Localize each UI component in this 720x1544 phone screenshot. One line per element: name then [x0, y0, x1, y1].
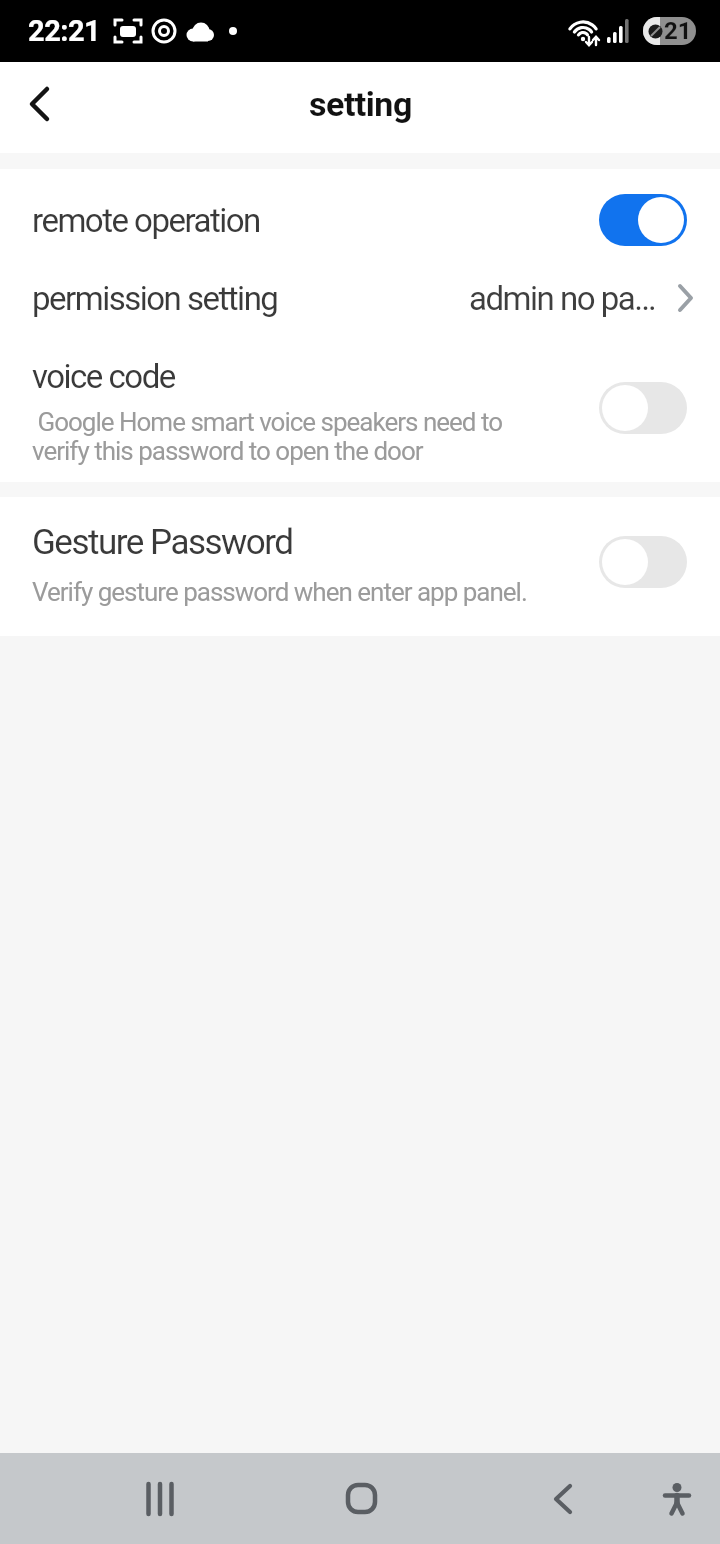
- staticText: remote operation: [32, 201, 260, 240]
- button[interactable]: [507, 1453, 619, 1544]
- button[interactable]: voice code: [0, 350, 720, 466]
- button[interactable]: remote operation: [0, 194, 720, 246]
- staticText: Google Home smart voice speakers need to…: [32, 407, 503, 466]
- staticText: 21: [664, 17, 692, 45]
- button[interactable]: [104, 1453, 216, 1544]
- staticText: Verify gesture password when enter app p…: [32, 577, 527, 607]
- staticText: 22:21: [28, 14, 101, 48]
- button[interactable]: permission setting: [0, 272, 720, 324]
- button[interactable]: [599, 194, 687, 246]
- button[interactable]: [16, 80, 64, 128]
- button[interactable]: Gesture Password: [0, 497, 720, 636]
- button[interactable]: [599, 382, 687, 434]
- staticText: admin no pa…: [469, 279, 655, 318]
- button[interactable]: [305, 1453, 417, 1544]
- staticText: setting: [309, 84, 412, 124]
- button[interactable]: [599, 536, 687, 588]
- staticText: Gesture Password: [32, 522, 293, 563]
- staticText: voice code: [32, 357, 175, 396]
- button[interactable]: [649, 1453, 705, 1544]
- staticText: permission setting: [32, 279, 278, 318]
